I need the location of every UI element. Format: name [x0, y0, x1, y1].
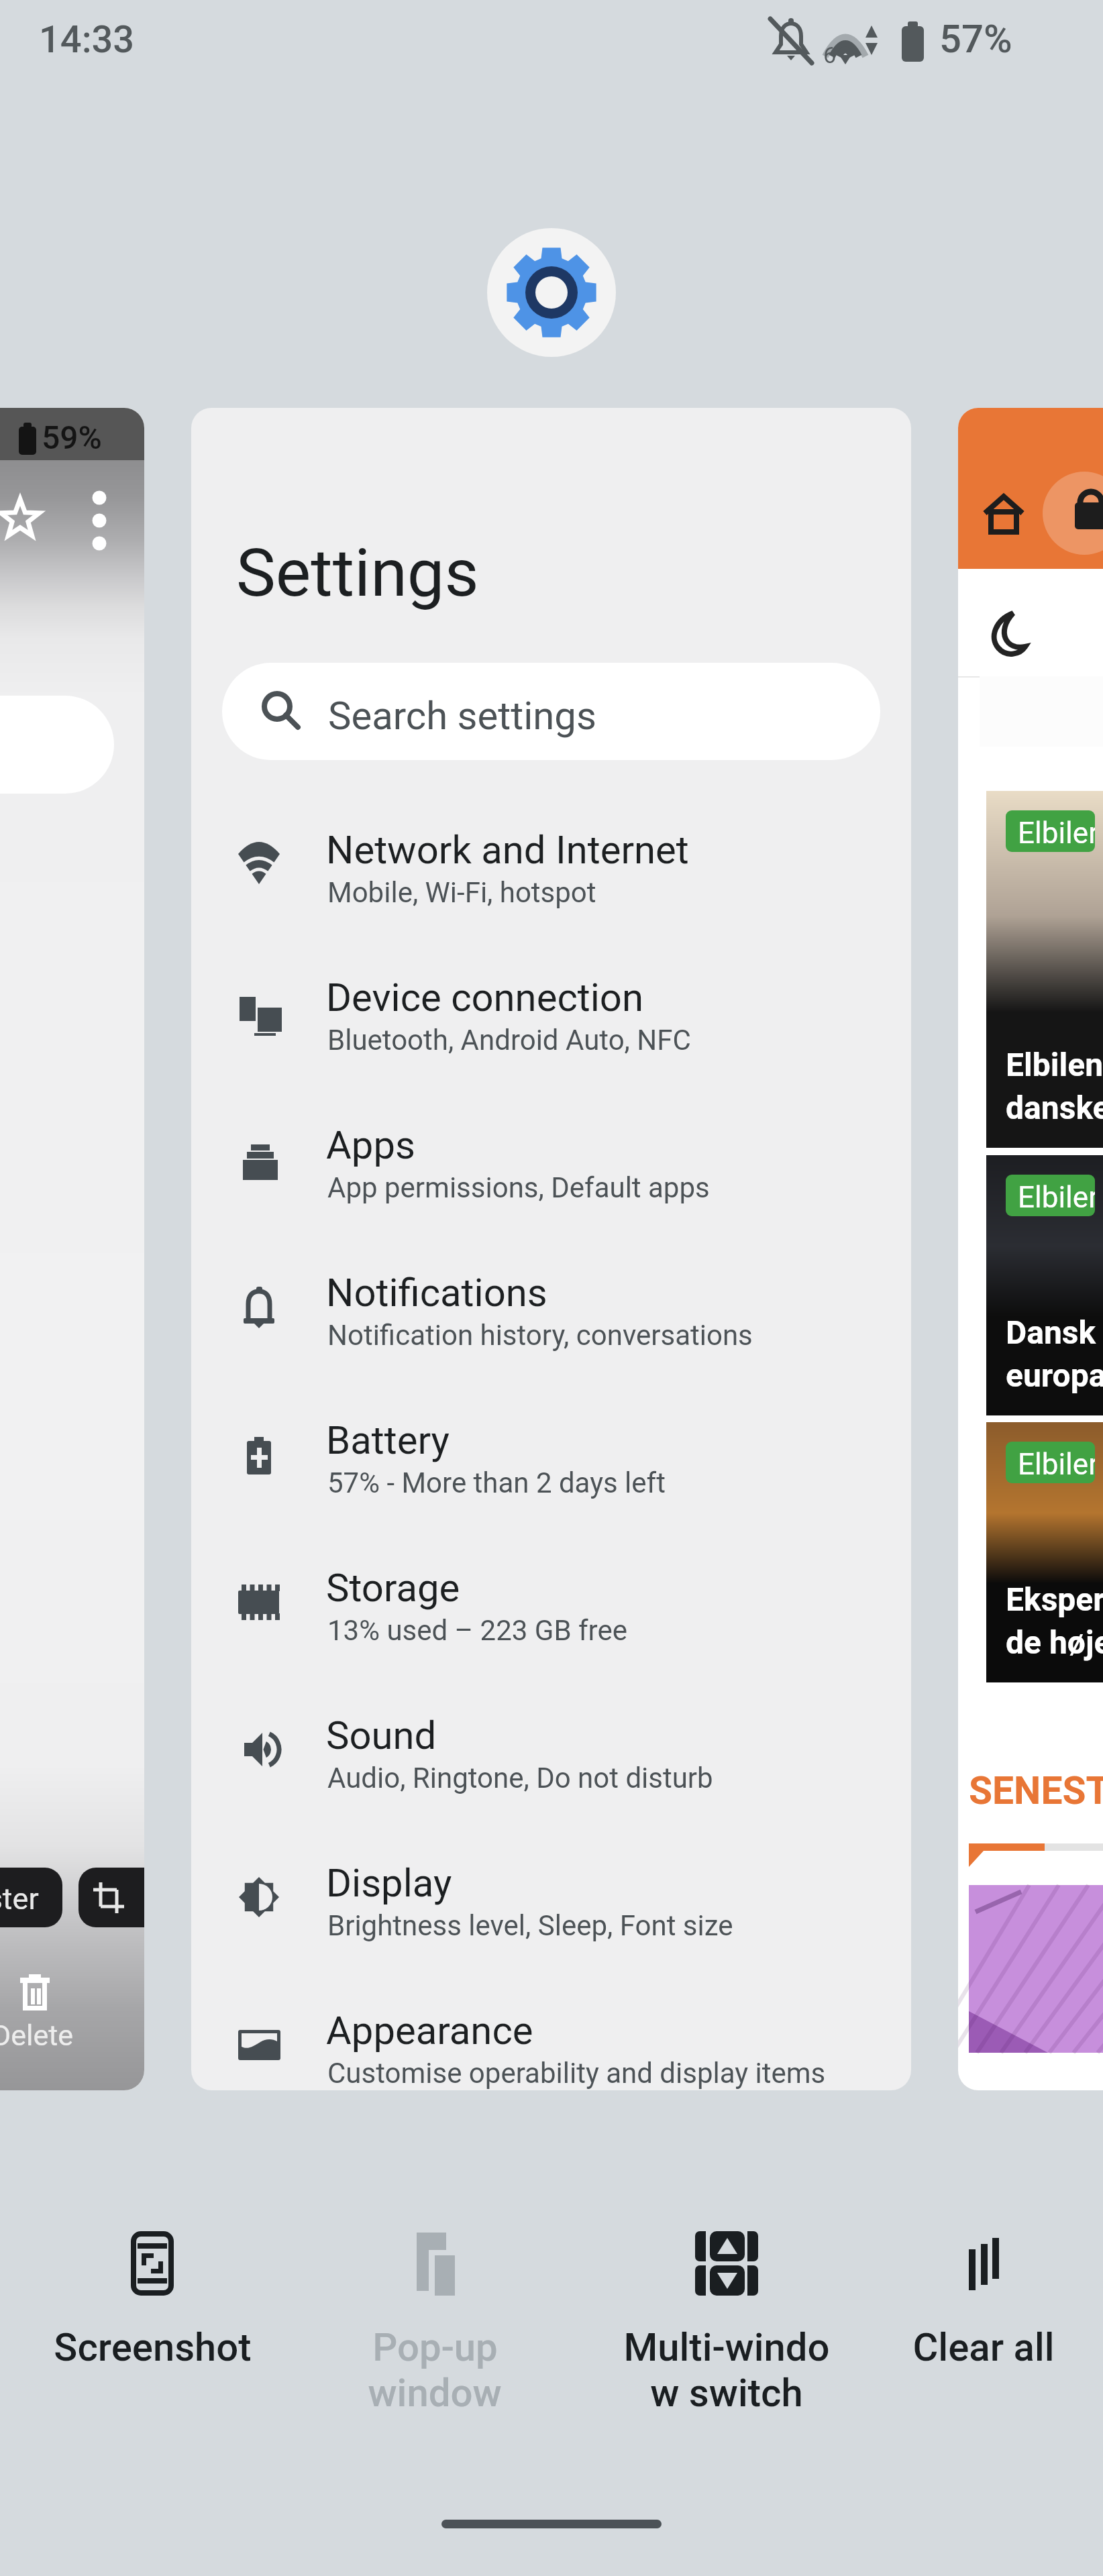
staticText: window — [368, 2370, 502, 2416]
staticText: 14:33 — [39, 17, 135, 62]
button[interactable]: Settings — [191, 408, 911, 2090]
staticText: Bluetooth, Android Auto, NFC — [327, 1024, 691, 1057]
staticText: Audio, Ringtone, Do not disturb — [327, 1762, 713, 1794]
staticText: Customise operability and display items — [327, 2057, 826, 2090]
staticText: w switch — [650, 2370, 803, 2416]
staticText: Search settings — [328, 693, 596, 739]
staticText: Elbiler — [1018, 816, 1095, 851]
staticText: Elbiler — [1018, 1447, 1095, 1482]
staticText: Dansk — [1006, 1313, 1096, 1351]
staticText: Battery — [326, 1417, 450, 1463]
staticText: Elbilen — [1006, 1046, 1103, 1083]
button[interactable]: Storage — [191, 1554, 911, 1701]
button[interactable]: Battery — [191, 1406, 911, 1554]
button[interactable]: Notifications — [191, 1258, 911, 1406]
staticText: Brightness level, Sleep, Font size — [327, 1909, 733, 1942]
staticText: de høje — [1006, 1623, 1103, 1661]
staticText: SENESTE — [969, 1768, 1103, 1813]
staticText: danske — [1006, 1089, 1103, 1126]
staticText: 6 — [823, 42, 837, 68]
button[interactable]: Multi-windo — [586, 2229, 868, 2443]
button[interactable]: Screenshot — [11, 2229, 293, 2443]
staticText: Eksper — [1006, 1580, 1103, 1618]
staticText: App permissions, Default apps — [327, 1171, 710, 1204]
staticText: Pop-up — [372, 2324, 498, 2370]
staticText: Storage — [326, 1565, 460, 1611]
staticText: europa — [1006, 1356, 1103, 1394]
button[interactable]: Sound — [191, 1701, 911, 1849]
staticText: Device connection — [326, 975, 643, 1020]
staticText: Mobile, Wi-Fi, hotspot — [327, 876, 596, 909]
staticText: Apps — [326, 1122, 415, 1168]
button[interactable]: Clear all — [843, 2229, 1103, 2443]
staticText: Multi-windo — [623, 2324, 830, 2370]
staticText: Juster — [0, 1881, 39, 1917]
staticText: Appearance — [326, 2008, 533, 2053]
button[interactable]: Search settings — [222, 663, 880, 760]
button[interactable]: Pop-up — [294, 2229, 576, 2443]
staticText: 59% — [42, 419, 102, 456]
staticText: Settings — [236, 534, 479, 612]
button[interactable]: Device connection — [191, 963, 911, 1111]
other: Settings app — [487, 228, 616, 357]
staticText: Display — [326, 1860, 452, 1906]
staticText: Notification history, conversations — [327, 1319, 753, 1352]
button[interactable]: Network and Internet — [191, 816, 911, 963]
button[interactable]: Apps — [191, 1111, 911, 1258]
button[interactable]: 59% — [0, 408, 144, 2090]
staticText: Network and Internet — [326, 827, 689, 873]
staticText: 13% used – 223 GB free — [327, 1614, 627, 1647]
button[interactable]: Display — [191, 1849, 911, 1996]
staticText: Notifications — [326, 1270, 547, 1316]
staticText: 57% - More than 2 days left — [327, 1466, 666, 1499]
staticText: Clear all — [912, 2324, 1055, 2370]
staticText: Screenshot — [54, 2324, 252, 2370]
button[interactable]: Elbiler — [958, 408, 1103, 2090]
staticText: Delete — [0, 2019, 74, 2052]
staticText: Elbiler — [1018, 1180, 1095, 1215]
staticText: 57% — [939, 16, 1012, 62]
button[interactable]: Appearance — [191, 1996, 911, 2090]
staticText: Sound — [326, 1713, 437, 1758]
